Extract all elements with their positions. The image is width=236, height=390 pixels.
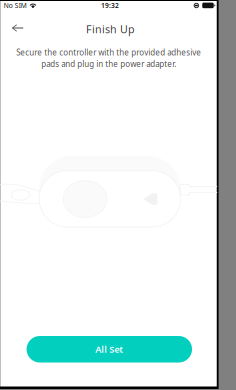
button[interactable]: Back bbox=[0, 15, 34, 41]
staticText: Finish Up bbox=[86, 22, 135, 36]
button[interactable]: All Set bbox=[27, 336, 192, 362]
staticText: All Set bbox=[95, 343, 123, 355]
staticText: No SIM bbox=[4, 1, 27, 10]
staticText: Secure the controller with the provided … bbox=[16, 47, 201, 69]
staticText: 19:32 bbox=[101, 1, 119, 10]
